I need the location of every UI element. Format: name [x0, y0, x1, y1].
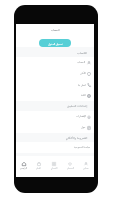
button[interactable]: الرئيسية — [16, 156, 31, 177]
button[interactable]: الإشعارات — [16, 111, 94, 122]
staticText: السلة — [36, 167, 41, 169]
staticText: تسجيل الدخول — [48, 42, 63, 45]
staticText: الإشعارات — [76, 115, 86, 118]
staticText: الشروط والأحكام — [66, 136, 88, 140]
staticText: الأقسام — [51, 167, 58, 169]
staticText: الحساب — [77, 61, 86, 64]
staticText: الأمان — [80, 72, 86, 75]
staticText: الحساب — [77, 51, 88, 54]
staticText: المفضلة — [67, 167, 74, 169]
button[interactable]: حول — [16, 122, 94, 133]
button[interactable]: اتصل بنا — [16, 79, 94, 90]
button[interactable]: الحساب — [16, 57, 94, 68]
staticText: سياسة الخصوصية — [74, 146, 91, 149]
staticText: إعدادات التطبيق — [67, 104, 88, 108]
button[interactable]: الأمان — [16, 68, 94, 79]
staticText: حسابي — [83, 167, 89, 169]
button[interactable]: تسجيل الدخول — [39, 39, 71, 47]
button[interactable]: اللغة — [16, 90, 94, 101]
staticText: الرئيسية — [20, 167, 27, 169]
staticText: اللغة — [81, 94, 86, 97]
button[interactable]: الأقسام — [46, 156, 62, 177]
staticText: اتصل بنا — [78, 83, 86, 86]
button[interactable]: المفضلة — [62, 156, 78, 177]
button[interactable]: سياسة الخصوصية — [16, 142, 94, 153]
staticText: حول — [81, 126, 86, 129]
button[interactable]: حسابي — [78, 156, 94, 177]
staticText: الحساب — [51, 29, 60, 32]
button[interactable]: السلة — [31, 156, 46, 177]
